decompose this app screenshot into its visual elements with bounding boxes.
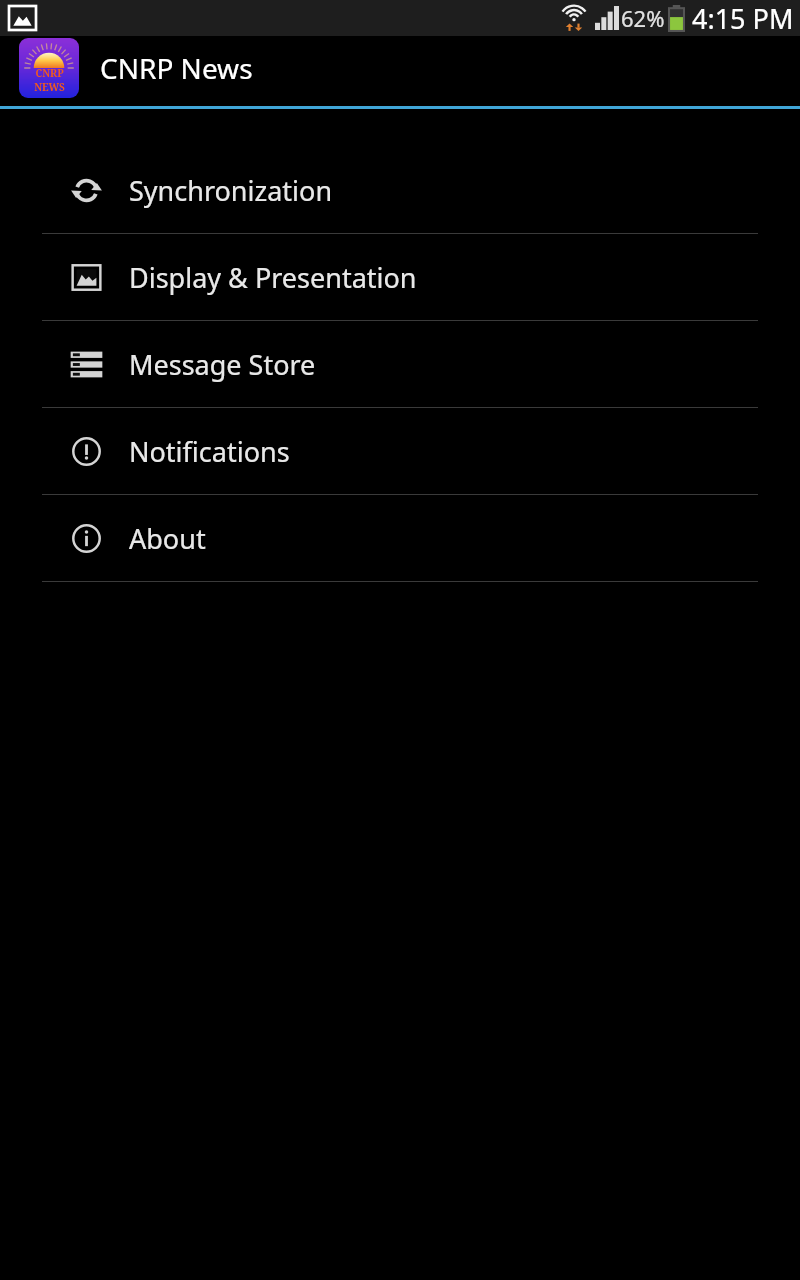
staticText: CNRP News <box>100 49 253 87</box>
staticText: NEWS <box>34 80 65 94</box>
staticText: Display & Presentation <box>129 259 417 296</box>
button[interactable]: Notifications <box>0 408 800 494</box>
staticText: 62% <box>621 3 665 33</box>
staticText: 4:15 PM <box>692 0 794 36</box>
button[interactable]: Display & Presentation <box>0 234 800 320</box>
button[interactable]: Synchronization <box>0 147 800 233</box>
staticText: Message Store <box>129 346 316 383</box>
staticText: Synchronization <box>129 172 333 209</box>
staticText: About <box>129 520 206 557</box>
staticText: Notifications <box>129 433 290 470</box>
button[interactable]: About <box>0 495 800 581</box>
staticText: CNRP <box>35 66 64 80</box>
button[interactable]: Message Store <box>0 321 800 407</box>
